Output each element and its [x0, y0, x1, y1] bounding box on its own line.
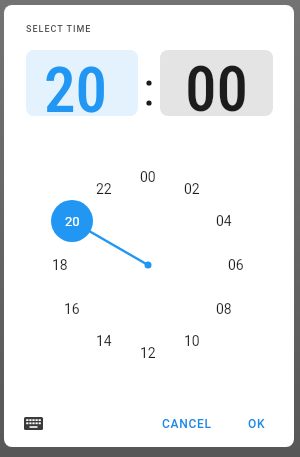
staticText: 08 [216, 301, 232, 317]
staticText: 14 [96, 333, 112, 349]
staticText: 20 [65, 214, 80, 229]
staticText: OK [248, 417, 266, 431]
button[interactable]: 16 [56, 299, 88, 319]
staticText: 22 [96, 181, 112, 197]
button[interactable]: 20 [51, 200, 93, 242]
staticText: 00 [140, 169, 156, 185]
staticText: 06 [228, 257, 244, 273]
staticText: 18 [52, 257, 68, 273]
staticText: 16 [64, 301, 80, 317]
button[interactable]: CANCEL [156, 409, 218, 438]
button[interactable]: 02 [176, 179, 208, 199]
staticText: 20 [44, 54, 108, 116]
staticText: SELECT TIME [26, 24, 92, 35]
button[interactable]: 00 [132, 167, 164, 187]
button[interactable]: 06 [220, 255, 252, 275]
button[interactable]: 00 [160, 50, 273, 116]
button[interactable]: 14 [88, 331, 120, 351]
button[interactable]: 04 [208, 211, 240, 231]
staticText: 00 [185, 53, 249, 116]
staticText: CANCEL [162, 417, 212, 431]
button[interactable]: 12 [132, 343, 164, 363]
button[interactable] [16, 409, 50, 437]
staticText: 10 [184, 333, 200, 349]
button[interactable]: 08 [208, 299, 240, 319]
button[interactable]: 20 [26, 50, 138, 116]
staticText: 12 [140, 345, 156, 361]
button[interactable]: 18 [44, 255, 76, 275]
staticText: 02 [184, 181, 200, 197]
button[interactable]: 22 [88, 179, 120, 199]
button[interactable]: OK [238, 409, 276, 438]
button[interactable]: 10 [176, 331, 208, 351]
staticText: 04 [216, 213, 232, 229]
